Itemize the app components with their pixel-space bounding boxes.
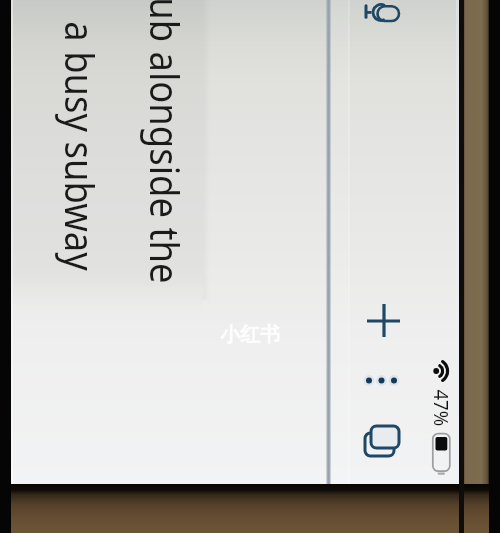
staticText: ub alongside the	[139, 0, 193, 284]
button[interactable]: Reader view	[360, 0, 404, 28]
button[interactable]: Tabs	[361, 422, 405, 462]
staticText: 47%	[428, 389, 455, 427]
staticText: a busy subway	[54, 21, 108, 272]
button[interactable]: New tab	[363, 300, 404, 341]
staticText: 小红书	[220, 322, 280, 346]
button[interactable]: More options	[360, 370, 404, 392]
other: Battery 47 percent	[430, 430, 454, 478]
other: Wi-Fi	[428, 354, 456, 388]
